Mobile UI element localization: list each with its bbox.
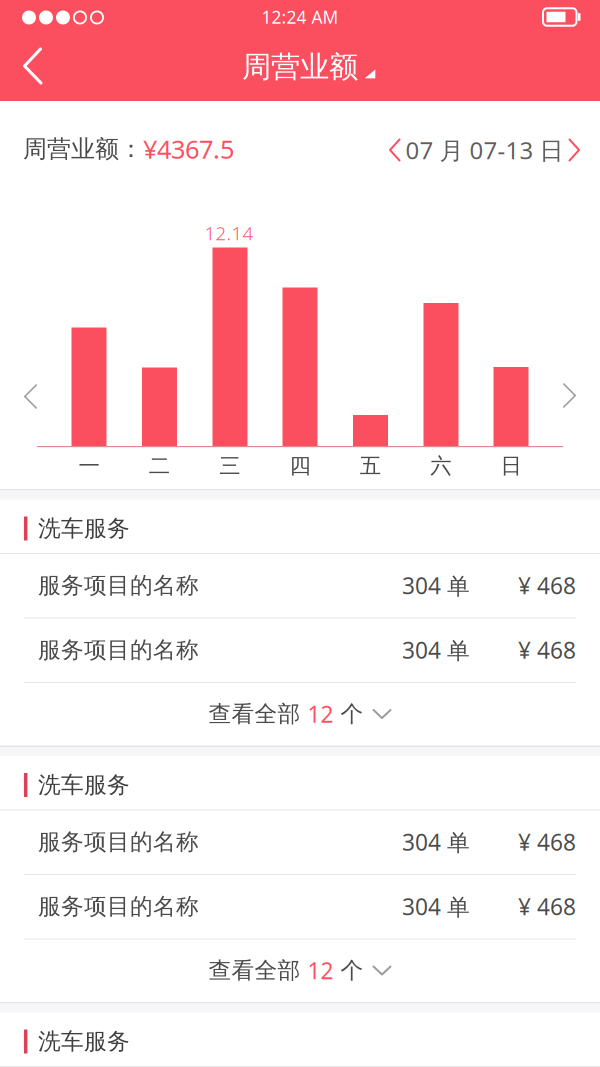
staticText: 查看全部 [208, 700, 307, 728]
button[interactable]: 服务项目的名称 [0, 827, 600, 857]
button[interactable] [24, 384, 37, 409]
staticText: 一 [78, 453, 99, 479]
staticText: ¥ 468 [518, 570, 576, 600]
staticText: 304 单 [402, 635, 470, 665]
staticText: 304 单 [402, 827, 470, 857]
staticText: 二 [149, 453, 170, 479]
staticText: 服务项目的名称 [38, 893, 199, 920]
button[interactable] [24, 49, 44, 85]
staticText: 304 单 [402, 891, 470, 921]
button[interactable]: 查看全部 [208, 699, 391, 729]
staticText: ¥ 468 [518, 635, 576, 665]
button[interactable]: 服务项目的名称 [0, 635, 600, 665]
staticText: 服务项目的名称 [38, 636, 199, 664]
staticText: 查看全部 [208, 957, 307, 984]
staticText: 12.14 [204, 221, 253, 245]
staticText: 个 [333, 957, 363, 984]
staticText: 07 月 07-13 日 [405, 134, 563, 166]
staticText: 服务项目的名称 [38, 828, 199, 856]
staticText: ¥ 468 [518, 891, 576, 921]
staticText: 个 [333, 700, 363, 728]
staticText: 周营业额 [242, 49, 358, 85]
button[interactable] [563, 383, 576, 408]
button[interactable]: 查看全部 [208, 955, 391, 985]
staticText: 12 [307, 699, 333, 729]
staticText: 周营业额： [23, 134, 143, 164]
staticText: 12 [307, 955, 333, 985]
button[interactable]: 07 月 07-13 日 [389, 134, 580, 166]
staticText: 洗车服务 [38, 1028, 130, 1055]
staticText: 洗车服务 [38, 515, 130, 542]
staticText: 12:24 AM [261, 5, 338, 28]
button[interactable]: 服务项目的名称 [0, 891, 600, 921]
staticText: 日 [500, 453, 521, 479]
staticText: 304 单 [402, 570, 470, 600]
staticText: ¥4367.5 [143, 132, 234, 166]
staticText: 洗车服务 [38, 771, 130, 799]
staticText: 六 [430, 453, 451, 479]
staticText: 四 [289, 453, 310, 479]
button[interactable]: 周营业额 [242, 49, 358, 85]
button[interactable]: 服务项目的名称 [0, 570, 600, 600]
staticText: ¥ 468 [518, 827, 576, 857]
staticText: 五 [360, 453, 381, 479]
staticText: 三 [219, 453, 240, 479]
staticText: 服务项目的名称 [38, 572, 199, 599]
